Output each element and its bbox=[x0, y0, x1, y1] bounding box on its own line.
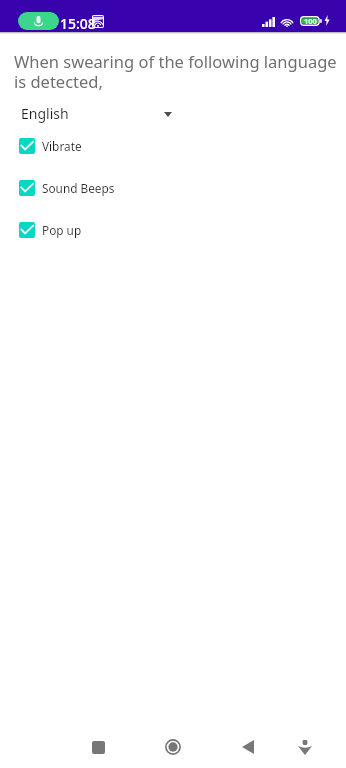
button[interactable]: English bbox=[14, 101, 180, 123]
staticText: Pop up bbox=[42, 222, 82, 238]
staticText: When swearing of the following language … bbox=[14, 50, 338, 93]
button[interactable]: Vibrate bbox=[19, 138, 346, 154]
staticText: 15:08 bbox=[60, 14, 96, 33]
staticText: English bbox=[21, 104, 69, 123]
button[interactable]: Pop up bbox=[19, 222, 346, 238]
button[interactable]: Hide keyboard bbox=[285, 727, 325, 767]
staticText: 100 bbox=[304, 16, 317, 26]
staticText: Sound Beeps bbox=[42, 180, 115, 196]
button[interactable]: Home bbox=[153, 727, 193, 767]
button[interactable]: Microphone in use bbox=[18, 12, 59, 30]
staticText: Vibrate bbox=[42, 138, 82, 154]
button[interactable]: Sound Beeps bbox=[19, 180, 346, 196]
button[interactable]: Back bbox=[228, 727, 268, 767]
button[interactable]: Recent apps bbox=[78, 727, 118, 767]
